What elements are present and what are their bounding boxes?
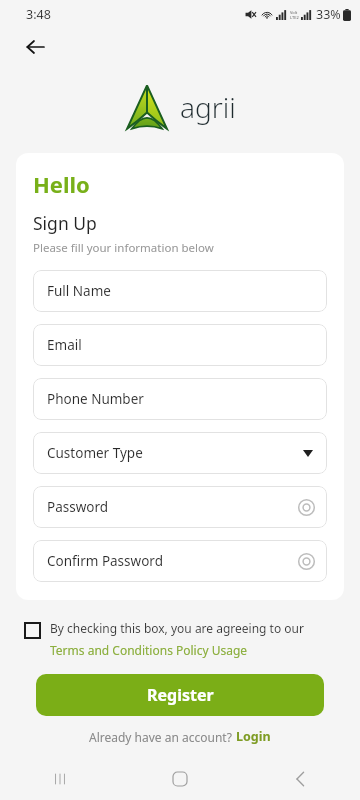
staticText: Register — [147, 684, 214, 706]
button[interactable]: Password — [33, 486, 327, 528]
button[interactable]: Home — [120, 758, 240, 800]
staticText: Sign Up — [33, 211, 97, 235]
staticText: Hello — [33, 169, 90, 199]
button[interactable]: Email — [33, 324, 327, 366]
button[interactable]: Back — [240, 758, 360, 800]
button[interactable]: By checking this box, you are agreeing t… — [24, 620, 336, 659]
staticText: Please fill your information below — [33, 240, 214, 256]
button[interactable]: Confirm Password — [33, 540, 327, 582]
button[interactable]: Login — [236, 728, 271, 745]
button[interactable]: Full Name — [33, 270, 327, 312]
staticText: 33% — [316, 6, 341, 23]
staticText: Password — [47, 498, 109, 516]
staticText: agrii — [180, 88, 236, 126]
staticText: Full Name — [47, 282, 111, 300]
button[interactable]: Customer Type — [33, 432, 327, 474]
staticText: LTE2 — [290, 15, 299, 20]
staticText: Phone Number — [47, 390, 144, 408]
staticText: Volt — [290, 10, 298, 15]
staticText: Customer Type — [47, 444, 143, 462]
button[interactable]: Register — [36, 674, 324, 716]
staticText: Email — [47, 336, 82, 354]
staticText: By checking this box, you are agreeing t… — [50, 620, 336, 659]
button[interactable]: Recent apps — [0, 758, 120, 800]
staticText: Login — [236, 728, 271, 745]
staticText: Already have an account? — [89, 729, 236, 745]
button[interactable]: Phone Number — [33, 378, 327, 420]
staticText: Confirm Password — [47, 552, 163, 570]
button[interactable]: Back — [17, 29, 53, 65]
staticText: 3:48 — [26, 6, 51, 23]
